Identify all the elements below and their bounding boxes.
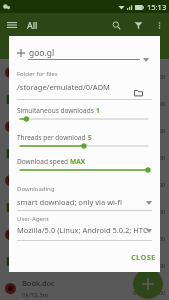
button[interactable]: clip.mp4 [0,140,169,167]
staticText: Mozilla/5.0 (Linux; Android 5.0.2; HTC [17,225,150,235]
staticText: /storage/emulated/0/ADM [17,82,110,92]
button[interactable]: photo.png [0,221,169,248]
staticText: 00:00:00:00 [133,127,166,135]
button[interactable]: Mozilla/5.0 (Linux; Android 5.0.2; HTC [17,225,152,235]
staticText: 00:00:00:00 [133,235,166,243]
button[interactable]: archive.zip [0,59,169,86]
staticText: 5 [88,133,92,142]
staticText: 00:00:00:00 [133,154,166,162]
button[interactable]: Simultaneous downloads [17,115,151,123]
staticText: 0k/72.3m [22,237,49,245]
button[interactable]: More options [149,15,169,35]
staticText: report.pdf [22,89,58,99]
staticText: 0k/72.3m [22,156,49,164]
staticText: User-Agent [17,215,49,223]
staticText: Threads per download [17,133,88,142]
button[interactable]: Menu [0,13,23,36]
staticText: song.mp3 [22,170,58,180]
button[interactable]: song.mp3 [0,167,169,194]
staticText: 0k/72.3m [22,102,49,110]
button[interactable]: Threads per download [17,142,151,150]
staticText: data.rar [22,197,50,207]
staticText: Simultaneous downloads [17,106,96,115]
staticText: Downloading [17,185,55,193]
staticText: 0k/72.3m [22,291,49,299]
button[interactable]: report.pdf [0,86,169,113]
button[interactable]: smart download; only via wi-fi [17,197,152,207]
staticText: All [27,19,38,31]
staticText: MAX [70,157,85,166]
staticText: goo.gl [29,47,55,59]
staticText: Folder for files [17,70,58,78]
staticText: clip.mp4 [22,143,53,153]
button[interactable]: Download speed [17,166,151,174]
staticText: 00:00:00:00 [133,73,166,81]
button[interactable]: notes.txt [0,248,169,275]
staticText: 0k/72.3m [22,75,49,83]
staticText: photo.png [22,224,59,234]
staticText: 00:00:00:00 [133,208,166,216]
staticText: 0k/72.3m [22,210,49,218]
staticText: smart download; only via wi-fi [17,197,122,207]
staticText: 1 [96,106,100,115]
button[interactable]: setup.exe [0,113,169,140]
staticText: 0k/72.3m [22,183,49,191]
button[interactable]: Search [105,14,127,36]
button[interactable]: Choose folder [132,86,144,98]
button[interactable]: Filter [127,14,149,36]
staticText: 00:00:00:00 [133,181,166,189]
staticText: 00:00:00:00 [133,100,166,108]
button[interactable]: data.rar [0,194,169,221]
staticText: Download speed [17,157,70,166]
staticText: 00:00:00:00 [133,262,166,270]
staticText: 00:00:00:00 [133,289,166,297]
button[interactable]: Book.doc [0,275,169,300]
staticText: setup.exe [22,116,56,126]
staticText: Book.doc [22,278,55,288]
staticText: 15:13 [147,2,167,12]
staticText: 0k/72.3m [22,129,49,137]
staticText: CLOSE [131,252,156,262]
button[interactable]: Add download [133,269,163,299]
button[interactable]: CLOSE [125,248,162,266]
